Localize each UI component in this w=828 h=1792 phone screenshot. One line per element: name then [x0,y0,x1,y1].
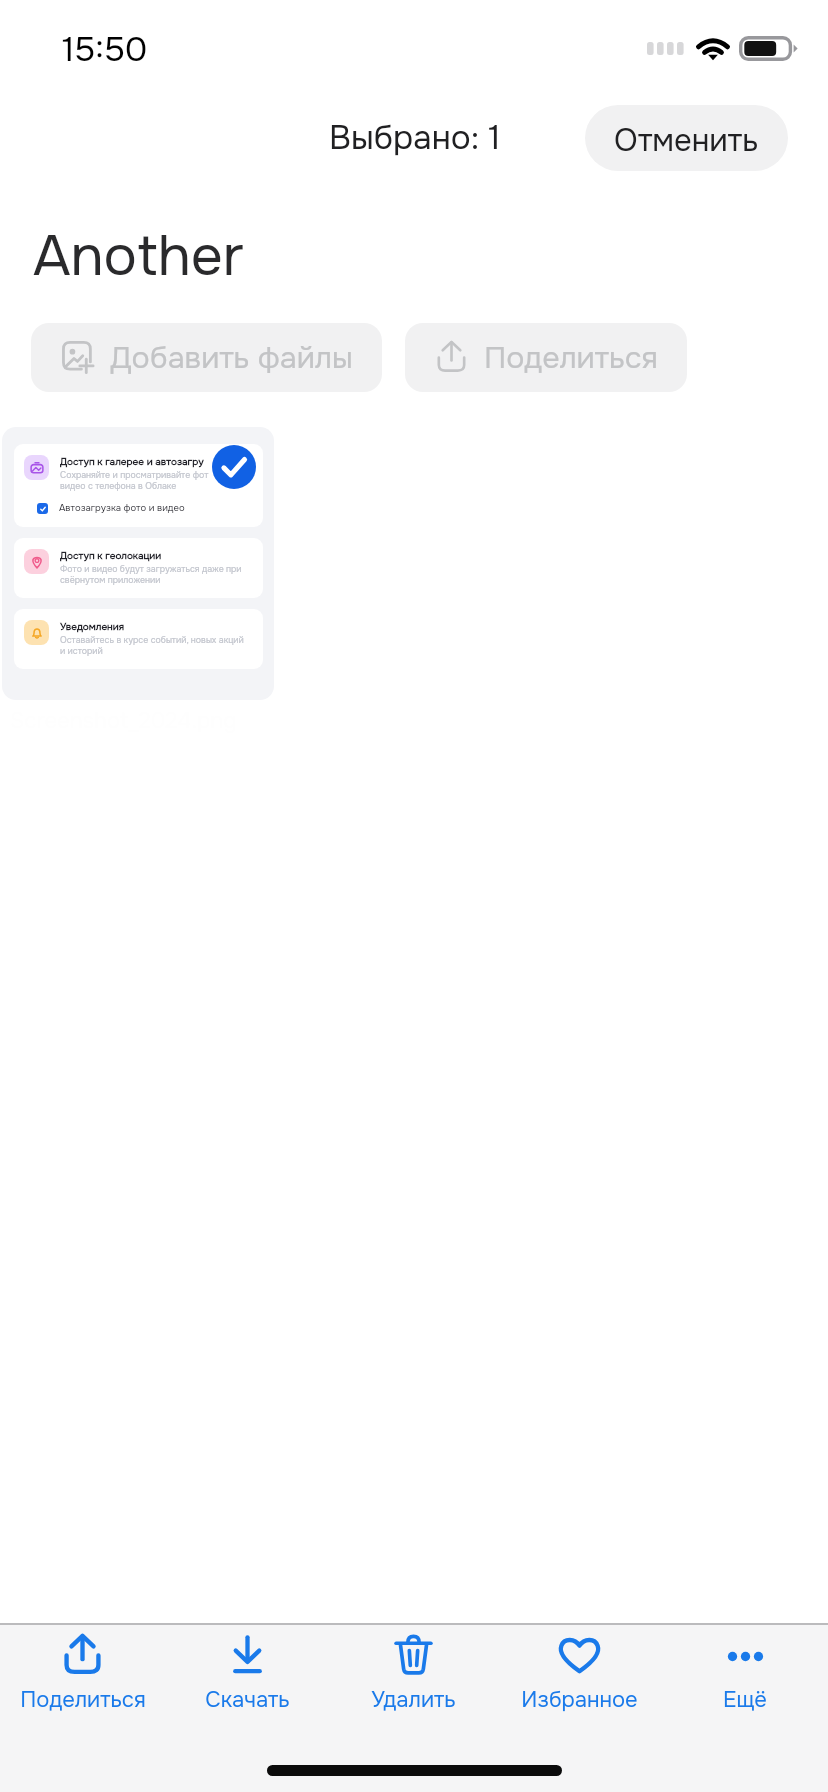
button[interactable]: Ещё [662,1628,828,1717]
staticText: Ещё [723,1686,767,1714]
staticText: Отменить [614,121,759,161]
staticText: Another [33,221,244,292]
staticText: видео с телефона в Облаке [60,480,177,491]
staticText: Выбрано: 1 [329,117,501,160]
staticText: Доступ к галерее и автозагру [60,455,204,468]
staticText: 15:50 [62,28,148,71]
button[interactable]: Поделиться [0,1628,165,1717]
staticText: Уведомления [60,620,125,633]
button[interactable]: Добавить файлы [31,323,382,392]
staticText: Поделиться [20,1686,146,1714]
button[interactable]: Selected screenshot [2,427,274,700]
button[interactable]: Отменить [585,105,788,171]
staticText: Скачать [205,1686,290,1714]
staticText: Доступ к геолокации [60,549,162,562]
staticText: Поделиться [484,338,658,377]
button[interactable]: Скачать [165,1628,330,1717]
staticText: Удалить [371,1686,456,1714]
staticText: Автозагрузка фото и видео [59,502,185,514]
staticText: Добавить файлы [110,338,353,377]
staticText: свёрнутом приложении [60,574,161,585]
staticText: Оставайтесь в курсе событий, новых акций [60,634,244,645]
other: Selected [212,445,256,489]
staticText: Сохраняйте и просматривайте фот [60,469,209,480]
button[interactable]: Избранное [496,1628,662,1717]
button[interactable]: Удалить [330,1628,496,1717]
button[interactable]: Поделиться [405,323,687,392]
staticText: и историй [60,645,103,656]
staticText: Фото и видео будут загружаться даже при [60,563,242,574]
staticText: Избранное [521,1686,638,1714]
